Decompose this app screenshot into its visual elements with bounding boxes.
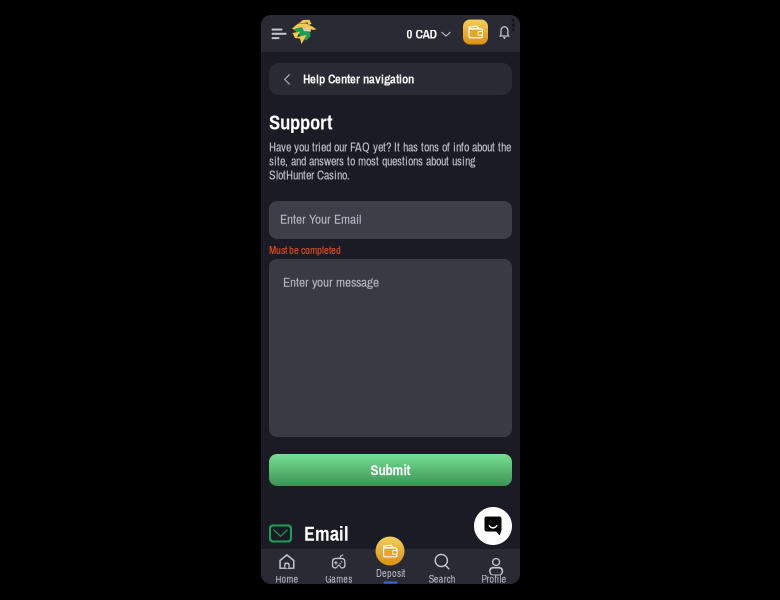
button[interactable]: Search bbox=[416, 549, 468, 584]
button[interactable]: 0 CAD bbox=[405, 21, 453, 47]
staticText: Home bbox=[275, 572, 298, 586]
button[interactable]: Open menu bbox=[266, 21, 292, 47]
button[interactable]: Submit bbox=[269, 454, 512, 486]
staticText: Enter your message bbox=[283, 273, 379, 291]
staticText: Search bbox=[429, 572, 456, 586]
staticText: Email bbox=[304, 520, 349, 547]
button[interactable]: Profile bbox=[468, 549, 520, 584]
staticText: Games bbox=[325, 572, 352, 586]
staticText: Submit bbox=[370, 460, 410, 480]
staticText: Enter Your Email bbox=[280, 210, 361, 228]
staticText: SlotHunter Casino. bbox=[269, 167, 350, 183]
staticText: 0 CAD bbox=[406, 25, 436, 43]
staticText: Profile bbox=[482, 572, 507, 586]
button[interactable]: Live chat bbox=[474, 507, 512, 545]
button[interactable]: Games bbox=[313, 549, 365, 584]
button[interactable]: Help Center navigation bbox=[269, 63, 512, 95]
staticText: Must be completed bbox=[269, 243, 341, 257]
staticText: Help Center navigation bbox=[303, 70, 414, 88]
staticText: Support bbox=[269, 108, 333, 136]
button[interactable]: Notifications bbox=[498, 25, 511, 40]
button[interactable]: Deposit bbox=[375, 536, 404, 565]
staticText: site, and answers to most questions abou… bbox=[269, 153, 475, 169]
button[interactable]: Deposit bbox=[365, 549, 416, 584]
button[interactable]: Home bbox=[261, 549, 313, 584]
button[interactable]: Wallet bbox=[463, 19, 488, 44]
staticText: Deposit bbox=[376, 566, 405, 580]
staticText: Have you tried our FAQ yet? It has tons … bbox=[269, 139, 511, 155]
